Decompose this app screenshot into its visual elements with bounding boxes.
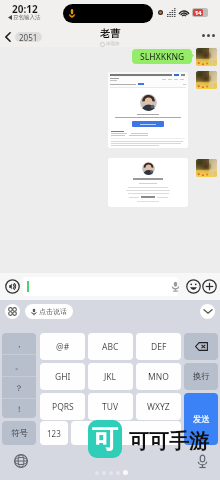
button[interactable]: Back: [3, 31, 44, 43]
button[interactable]: Space: [71, 421, 181, 445]
staticText: ！: [15, 404, 23, 414]
button[interactable]: [108, 158, 188, 207]
button[interactable]: Switch language: [14, 454, 28, 468]
staticText: 点击说话: [39, 307, 67, 316]
staticText: 2051: [19, 32, 38, 42]
button[interactable]: Voice input: [5, 279, 20, 294]
button[interactable]: 123: [40, 421, 68, 445]
button[interactable]: TUV: [88, 393, 133, 420]
button[interactable]: ABC: [88, 333, 133, 360]
button[interactable]: More options: [200, 32, 217, 39]
staticText: 发送: [193, 414, 210, 425]
button[interactable]: GHI: [40, 363, 85, 390]
staticText: JKL: [104, 371, 117, 383]
button[interactable]: @#: [40, 333, 85, 360]
staticText: 豆包输入法: [13, 14, 41, 21]
button[interactable]: ！: [2, 399, 36, 418]
staticText: PQRS: [52, 401, 74, 413]
staticText: 14: [195, 9, 202, 16]
button[interactable]: 点击说话: [25, 304, 73, 319]
staticText: 换行: [193, 371, 210, 382]
button[interactable]: Keyboard tools: [5, 304, 20, 319]
staticText: 可可手游: [129, 429, 209, 454]
staticText: WXYZ: [147, 401, 170, 413]
button[interactable]: SLHXKKNG: [132, 49, 192, 64]
button[interactable]: JKL: [88, 363, 133, 390]
staticText: 老曹: [100, 27, 120, 40]
staticText: GHI: [55, 371, 71, 383]
staticText: 。: [15, 361, 23, 371]
button[interactable]: [108, 72, 188, 148]
button[interactable]: ？: [2, 377, 36, 398]
button[interactable]: 换行: [184, 363, 218, 390]
staticText: 123: [47, 428, 61, 439]
button[interactable]: Emoji: [186, 279, 201, 294]
button[interactable]: 发送: [184, 393, 218, 445]
staticText: DEF: [151, 341, 167, 353]
staticText: ？: [15, 383, 23, 393]
staticText: 未添加: [106, 41, 120, 47]
button[interactable]: MNO: [136, 363, 181, 390]
staticText: 符号: [11, 428, 28, 439]
staticText: @#: [56, 341, 70, 353]
staticText: TUV: [102, 401, 119, 413]
button[interactable]: [23, 277, 178, 296]
staticText: ，: [15, 339, 23, 349]
staticText: 20:12: [12, 2, 38, 16]
button[interactable]: ，: [2, 333, 36, 354]
button[interactable]: Voice input: [196, 454, 209, 469]
button[interactable]: WXYZ: [136, 393, 181, 420]
button[interactable]: DEF: [136, 333, 181, 360]
button[interactable]: Hide keyboard: [200, 304, 215, 319]
staticText: MNO: [148, 371, 169, 383]
button[interactable]: PQRS: [40, 393, 85, 420]
button[interactable]: More functions: [202, 279, 217, 294]
staticText: 可: [92, 423, 118, 456]
button[interactable]: Backspace: [184, 333, 218, 360]
staticText: ABC: [102, 341, 119, 353]
staticText: SLHXKKNG: [140, 51, 185, 63]
button[interactable]: 符号: [2, 421, 36, 445]
button[interactable]: Voice message: [171, 281, 180, 292]
